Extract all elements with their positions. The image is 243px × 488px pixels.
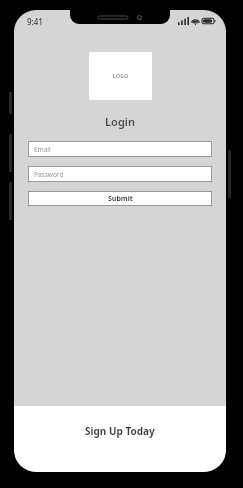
button[interactable]: Password <box>28 166 212 182</box>
button[interactable]: Sign Up Today <box>14 406 226 472</box>
button[interactable]: Submit <box>28 191 212 206</box>
staticText: 9:41 <box>27 16 43 27</box>
button[interactable]: Email <box>28 141 212 157</box>
staticText: Password <box>34 170 64 179</box>
staticText: Submit <box>108 194 133 204</box>
other: Front camera and speaker <box>70 10 170 24</box>
staticText: LOGO <box>113 73 129 80</box>
staticText: Email <box>34 145 51 154</box>
staticText: Sign Up Today <box>85 424 155 438</box>
staticText: Login <box>14 114 226 129</box>
